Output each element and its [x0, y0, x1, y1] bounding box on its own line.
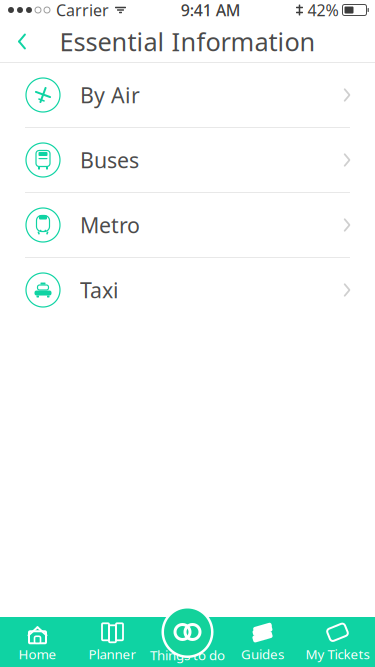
staticText: Planner — [88, 645, 136, 663]
button[interactable]: Home — [0, 617, 75, 667]
button[interactable]: Planner — [75, 617, 150, 667]
button[interactable]: Taxi — [0, 258, 375, 323]
button[interactable]: Back — [0, 20, 44, 63]
button[interactable]: Things to do — [161, 606, 213, 658]
staticText: Carrier — [56, 0, 109, 21]
staticText: Things to do — [150, 646, 225, 664]
staticText: Metro — [80, 211, 140, 239]
staticText: 9:41 AM — [181, 0, 241, 21]
staticText: My Tickets — [305, 645, 369, 663]
button[interactable]: Buses — [0, 128, 375, 193]
staticText: Essential Information — [59, 25, 315, 58]
button[interactable]: By Air — [0, 63, 375, 128]
staticText: Guides — [241, 645, 284, 663]
button[interactable]: Guides — [225, 617, 300, 667]
button[interactable]: My Tickets — [300, 617, 375, 667]
button[interactable]: Metro — [0, 193, 375, 258]
staticText: Buses — [80, 146, 139, 174]
staticText: Taxi — [80, 276, 119, 304]
button[interactable]: Things to do — [150, 617, 225, 667]
staticText: 42% — [307, 0, 338, 21]
staticText: By Air — [80, 81, 140, 109]
staticText: Home — [18, 645, 56, 663]
